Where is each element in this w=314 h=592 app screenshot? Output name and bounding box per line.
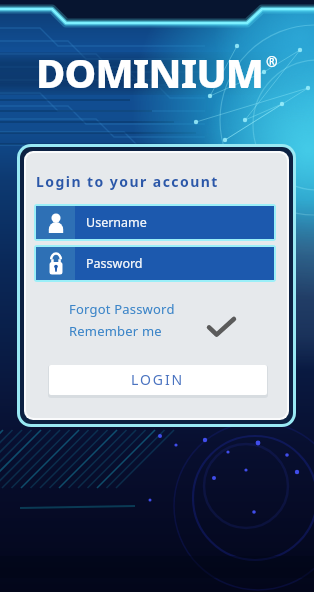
button[interactable]: Password: [36, 247, 274, 280]
button[interactable]: Forgot Password: [69, 300, 175, 318]
staticText: LOGIN: [131, 370, 185, 389]
staticText: Password: [86, 255, 143, 272]
button[interactable]: Username: [36, 206, 274, 239]
staticText: Login to your account: [36, 172, 219, 191]
button[interactable]: Remember me: [69, 322, 162, 340]
staticText: Username: [86, 214, 147, 231]
button[interactable]: LOGIN: [49, 365, 267, 395]
button[interactable]: [208, 317, 235, 337]
staticText: ®: [266, 52, 278, 71]
staticText: DOMINIUM: [36, 45, 264, 99]
